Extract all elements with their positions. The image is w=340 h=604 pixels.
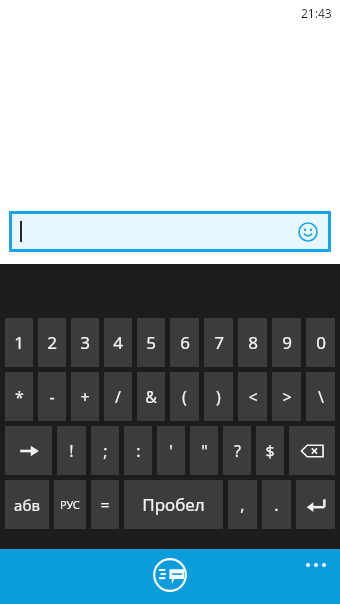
button[interactable]: РУС bbox=[54, 480, 86, 529]
staticText: - bbox=[49, 386, 55, 408]
button[interactable]: - bbox=[38, 372, 66, 421]
staticText: , bbox=[240, 494, 245, 516]
staticText: 9 bbox=[282, 331, 292, 354]
staticText: / bbox=[115, 386, 121, 408]
button[interactable]: ? bbox=[223, 426, 251, 475]
button[interactable]: Emoji bbox=[298, 222, 318, 242]
button[interactable]: 6 bbox=[170, 318, 199, 367]
staticText: . bbox=[274, 494, 279, 516]
button[interactable]: 9 bbox=[272, 318, 301, 367]
button[interactable]: 8 bbox=[238, 318, 267, 367]
staticText: * bbox=[15, 386, 24, 408]
staticText: 8 bbox=[248, 331, 258, 354]
button[interactable]: + bbox=[71, 372, 99, 421]
button[interactable]: Enter bbox=[296, 480, 335, 529]
button[interactable]: / bbox=[104, 372, 132, 421]
button[interactable]: More symbols bbox=[5, 426, 52, 475]
button[interactable]: " bbox=[190, 426, 218, 475]
staticText: " bbox=[201, 440, 208, 462]
staticText: ? bbox=[234, 440, 241, 462]
button[interactable]: * bbox=[5, 372, 33, 421]
button[interactable]: 3 bbox=[71, 318, 99, 367]
staticText: $ bbox=[265, 440, 275, 462]
button[interactable]: > bbox=[272, 372, 301, 421]
staticText: ) bbox=[216, 386, 221, 408]
staticText: + bbox=[80, 386, 90, 408]
button[interactable]: \ bbox=[306, 372, 335, 421]
staticText: ! bbox=[69, 440, 74, 462]
button[interactable]: . bbox=[262, 480, 291, 529]
button[interactable]: 7 bbox=[204, 318, 233, 367]
staticText: абв bbox=[14, 495, 40, 515]
staticText: & bbox=[145, 386, 157, 408]
staticText: РУС bbox=[60, 497, 80, 512]
staticText: > bbox=[282, 386, 292, 408]
staticText: \ bbox=[318, 386, 324, 408]
staticText: ; bbox=[103, 440, 108, 462]
button[interactable]: < bbox=[238, 372, 267, 421]
button[interactable]: 1 bbox=[5, 318, 33, 367]
button[interactable]: ; bbox=[91, 426, 119, 475]
staticText: 1 bbox=[14, 331, 24, 354]
button[interactable]: абв bbox=[5, 480, 49, 529]
button[interactable]: , bbox=[228, 480, 257, 529]
button[interactable]: & bbox=[137, 372, 165, 421]
button[interactable]: Backspace bbox=[289, 426, 335, 475]
staticText: 6 bbox=[180, 331, 190, 354]
button[interactable]: 0 bbox=[306, 318, 335, 367]
button[interactable]: Emoji bbox=[9, 211, 331, 252]
button[interactable]: ( bbox=[170, 372, 199, 421]
staticText: Пробел bbox=[142, 493, 205, 516]
staticText: 21:43 bbox=[301, 5, 332, 21]
staticText: 3 bbox=[80, 331, 90, 354]
button[interactable]: $ bbox=[256, 426, 284, 475]
staticText: 0 bbox=[316, 331, 326, 354]
button[interactable]: ) bbox=[204, 372, 233, 421]
staticText: ' bbox=[169, 440, 173, 462]
button[interactable]: 5 bbox=[137, 318, 165, 367]
staticText: ( bbox=[182, 386, 187, 408]
button[interactable]: ' bbox=[157, 426, 185, 475]
button[interactable]: ! bbox=[57, 426, 86, 475]
staticText: : bbox=[136, 440, 141, 462]
button[interactable]: 2 bbox=[38, 318, 66, 367]
button[interactable]: Пробел bbox=[124, 480, 223, 529]
button[interactable]: Send message bbox=[150, 555, 190, 595]
button[interactable]: = bbox=[91, 480, 119, 529]
button[interactable]: 4 bbox=[104, 318, 132, 367]
button[interactable]: : bbox=[124, 426, 152, 475]
staticText: = bbox=[100, 494, 110, 516]
button[interactable]: More options bbox=[302, 559, 330, 571]
staticText: 7 bbox=[214, 331, 224, 354]
staticText: 2 bbox=[47, 331, 57, 354]
staticText: 4 bbox=[113, 331, 123, 354]
staticText: < bbox=[248, 386, 258, 408]
staticText: 5 bbox=[146, 331, 156, 354]
